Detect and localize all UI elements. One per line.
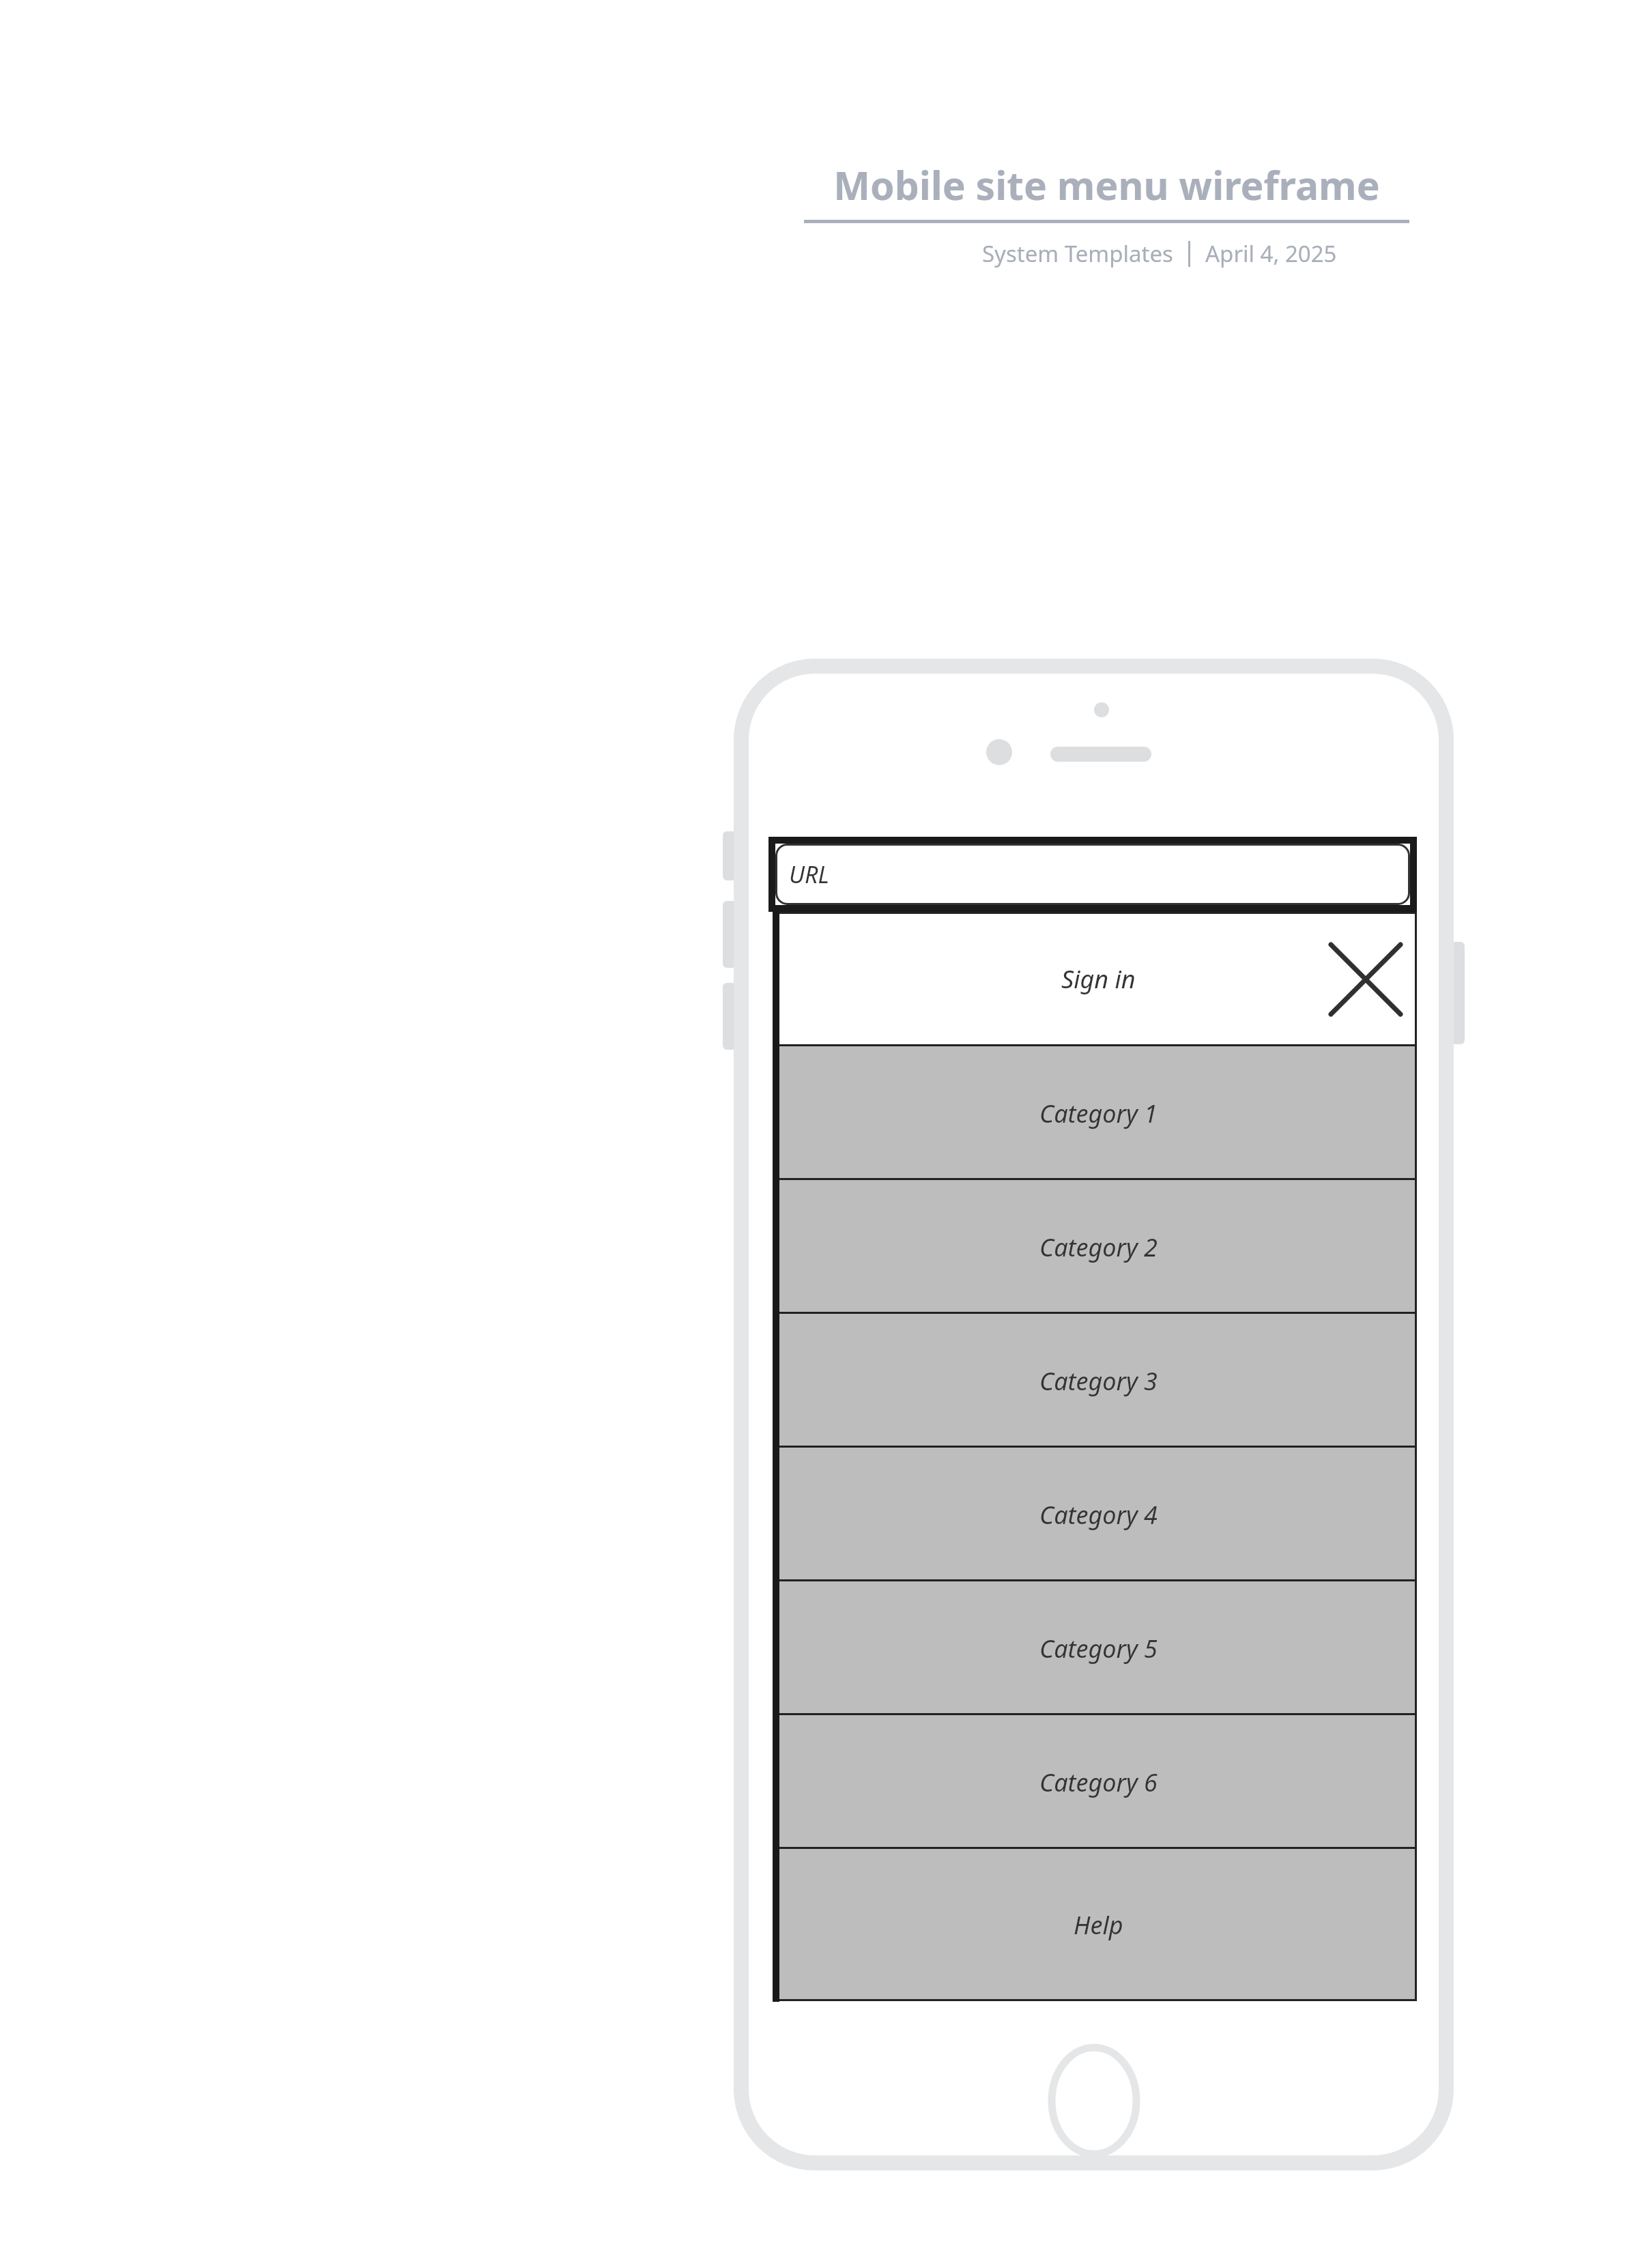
staticText: Category 5 <box>1039 1632 1158 1665</box>
button[interactable]: Category 1 <box>779 1046 1417 1180</box>
staticText: April 4, 2025 <box>1205 238 1337 269</box>
button[interactable]: Category 2 <box>779 1180 1417 1314</box>
staticText: System Templates <box>982 238 1173 269</box>
button[interactable]: Category 3 <box>779 1314 1417 1448</box>
button[interactable]: Help <box>779 1849 1417 2001</box>
staticText: Category 4 <box>1039 1498 1158 1532</box>
staticText: Mobile site menu wireframe <box>804 158 1409 212</box>
staticText: Category 6 <box>1039 1766 1158 1799</box>
staticText: Help <box>1074 1908 1123 1942</box>
button[interactable]: Close menu <box>1321 935 1410 1024</box>
button[interactable]: Sign in <box>1041 953 1156 1005</box>
button[interactable]: URL <box>775 844 1410 905</box>
staticText: URL <box>789 859 829 890</box>
staticText: Sign in <box>1061 962 1136 996</box>
button[interactable]: Category 6 <box>779 1715 1417 1849</box>
button[interactable]: Category 4 <box>779 1448 1417 1581</box>
button[interactable]: Category 5 <box>779 1581 1417 1715</box>
staticText: Category 3 <box>1039 1364 1158 1398</box>
staticText: Category 2 <box>1039 1231 1158 1264</box>
staticText: Category 1 <box>1039 1097 1158 1130</box>
